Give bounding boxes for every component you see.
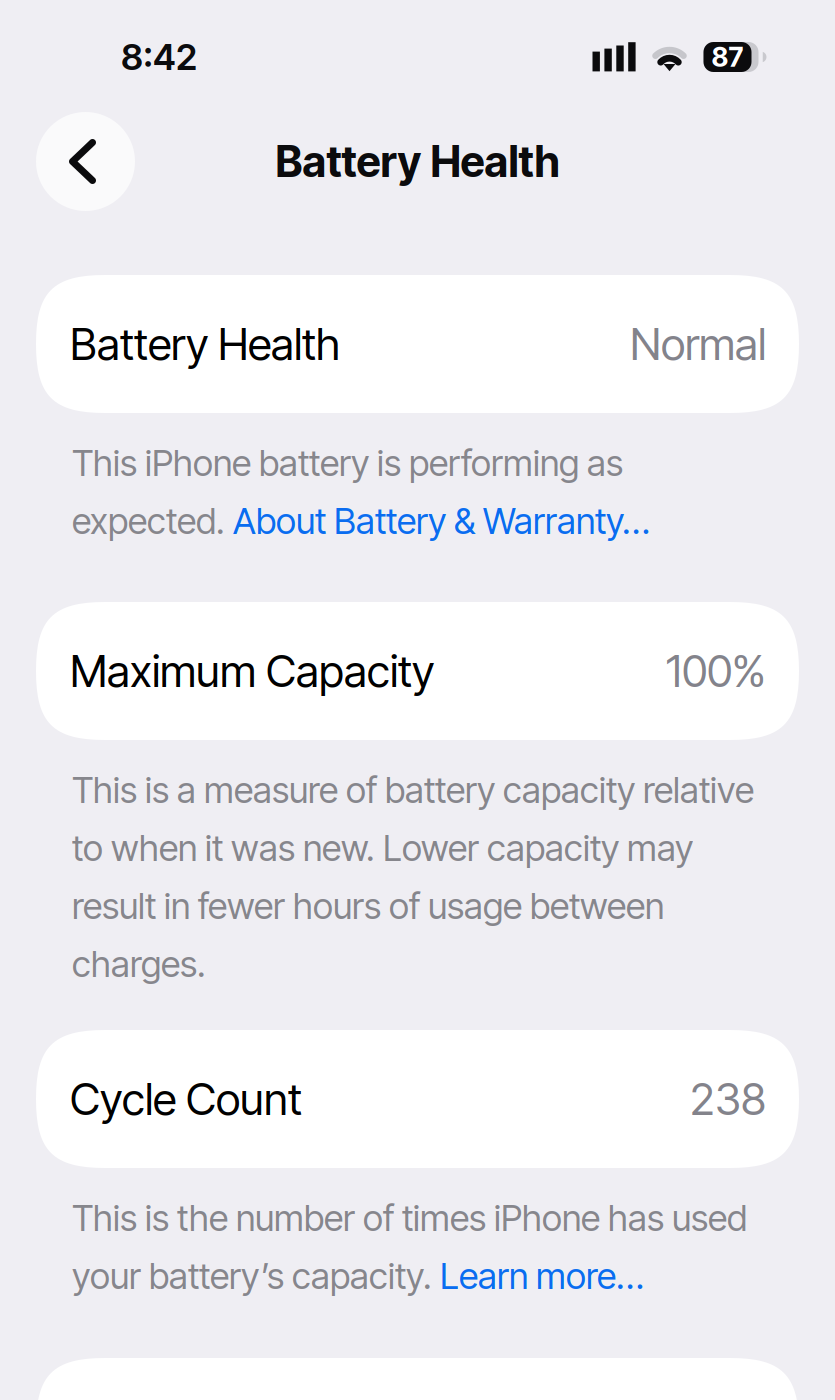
staticText: charges. bbox=[72, 942, 206, 986]
staticText: Normal bbox=[630, 317, 766, 371]
staticText: your battery’s capacity. bbox=[72, 1254, 440, 1298]
button[interactable]: Maximum Capacity bbox=[36, 602, 799, 740]
button[interactable]: Learn more… bbox=[440, 1254, 644, 1298]
staticText: Cycle Count bbox=[70, 1072, 302, 1126]
staticText: Battery Health bbox=[70, 317, 340, 371]
staticText: 87 bbox=[711, 41, 743, 73]
staticText: This iPhone battery is performing as bbox=[72, 441, 623, 485]
button[interactable]: Charging bbox=[36, 1358, 799, 1400]
button[interactable]: About Battery & Warranty… bbox=[233, 499, 650, 543]
staticText: to when it was new. Lower capacity may bbox=[72, 826, 693, 870]
staticText: expected. bbox=[72, 499, 233, 543]
staticText: About Battery & Warranty… bbox=[233, 499, 650, 543]
button[interactable]: Battery Health bbox=[36, 275, 799, 413]
button[interactable]: Cycle Count bbox=[36, 1030, 799, 1168]
staticText: Maximum Capacity bbox=[70, 644, 434, 698]
staticText: This is a measure of battery capacity re… bbox=[72, 768, 754, 812]
button[interactable]: Back bbox=[36, 112, 135, 211]
staticText: 100% bbox=[666, 644, 766, 698]
staticText: 238 bbox=[690, 1072, 766, 1126]
staticText: result in fewer hours of usage between bbox=[72, 884, 664, 928]
staticText: Battery Health bbox=[275, 136, 559, 187]
staticText: This is the number of times iPhone has u… bbox=[72, 1196, 747, 1240]
staticText: 8:42 bbox=[121, 35, 197, 79]
staticText: Learn more… bbox=[440, 1254, 644, 1298]
